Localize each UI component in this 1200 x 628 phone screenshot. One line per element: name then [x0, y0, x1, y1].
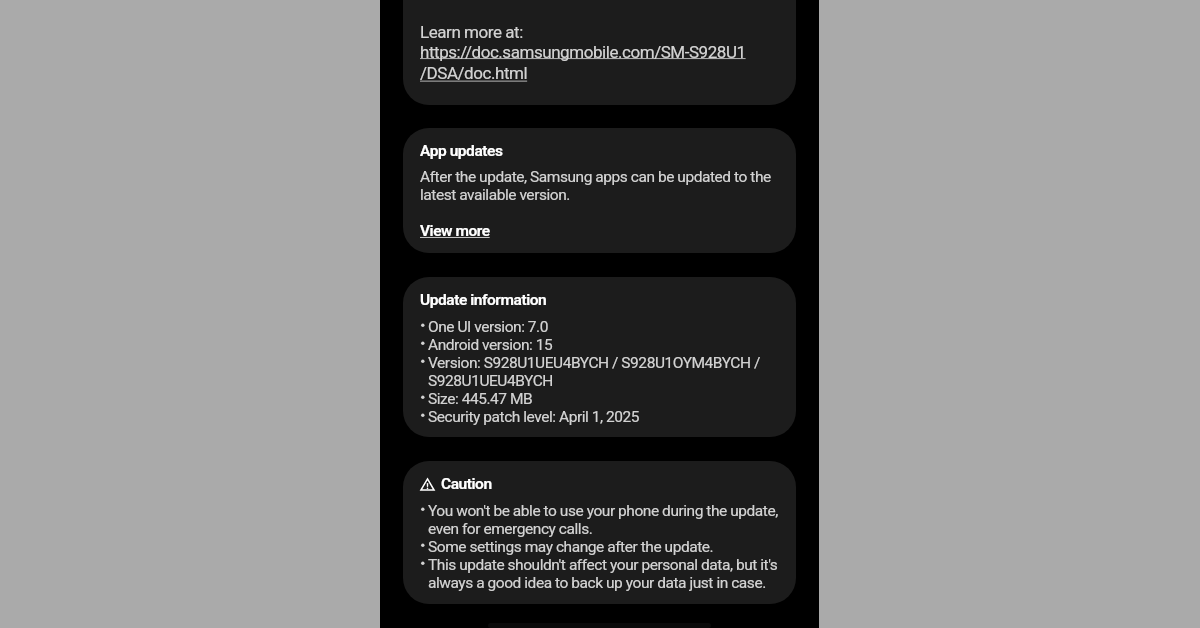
- staticText: After the update, Samsung apps can be up…: [420, 168, 782, 204]
- staticText: Android version: 15: [428, 336, 553, 354]
- other: Caution: [420, 478, 435, 491]
- staticText: https://doc.samsungmobile.com/SM-S928U1 …: [420, 42, 746, 84]
- staticText: Size: 445.47 MB: [428, 390, 533, 408]
- staticText: Learn more at:: [420, 22, 523, 42]
- button[interactable]: https://doc.samsungmobile.com/SM-S928U1 …: [420, 42, 746, 84]
- staticText: Some settings may change after the updat…: [428, 538, 714, 556]
- staticText: App updates: [420, 142, 503, 160]
- staticText: View more: [420, 222, 490, 240]
- staticText: Security patch level: April 1, 2025: [428, 408, 640, 426]
- button[interactable]: View more: [420, 222, 490, 240]
- staticText: Caution: [441, 475, 492, 493]
- staticText: Update information: [420, 291, 547, 309]
- staticText: You won't be able to use your phone duri…: [428, 502, 782, 538]
- staticText: This update shouldn't affect your person…: [428, 556, 782, 592]
- staticText: Version: S928U1UEU4BYCH / S928U1OYM4BYCH…: [428, 354, 782, 390]
- staticText: One UI version: 7.0: [428, 318, 549, 336]
